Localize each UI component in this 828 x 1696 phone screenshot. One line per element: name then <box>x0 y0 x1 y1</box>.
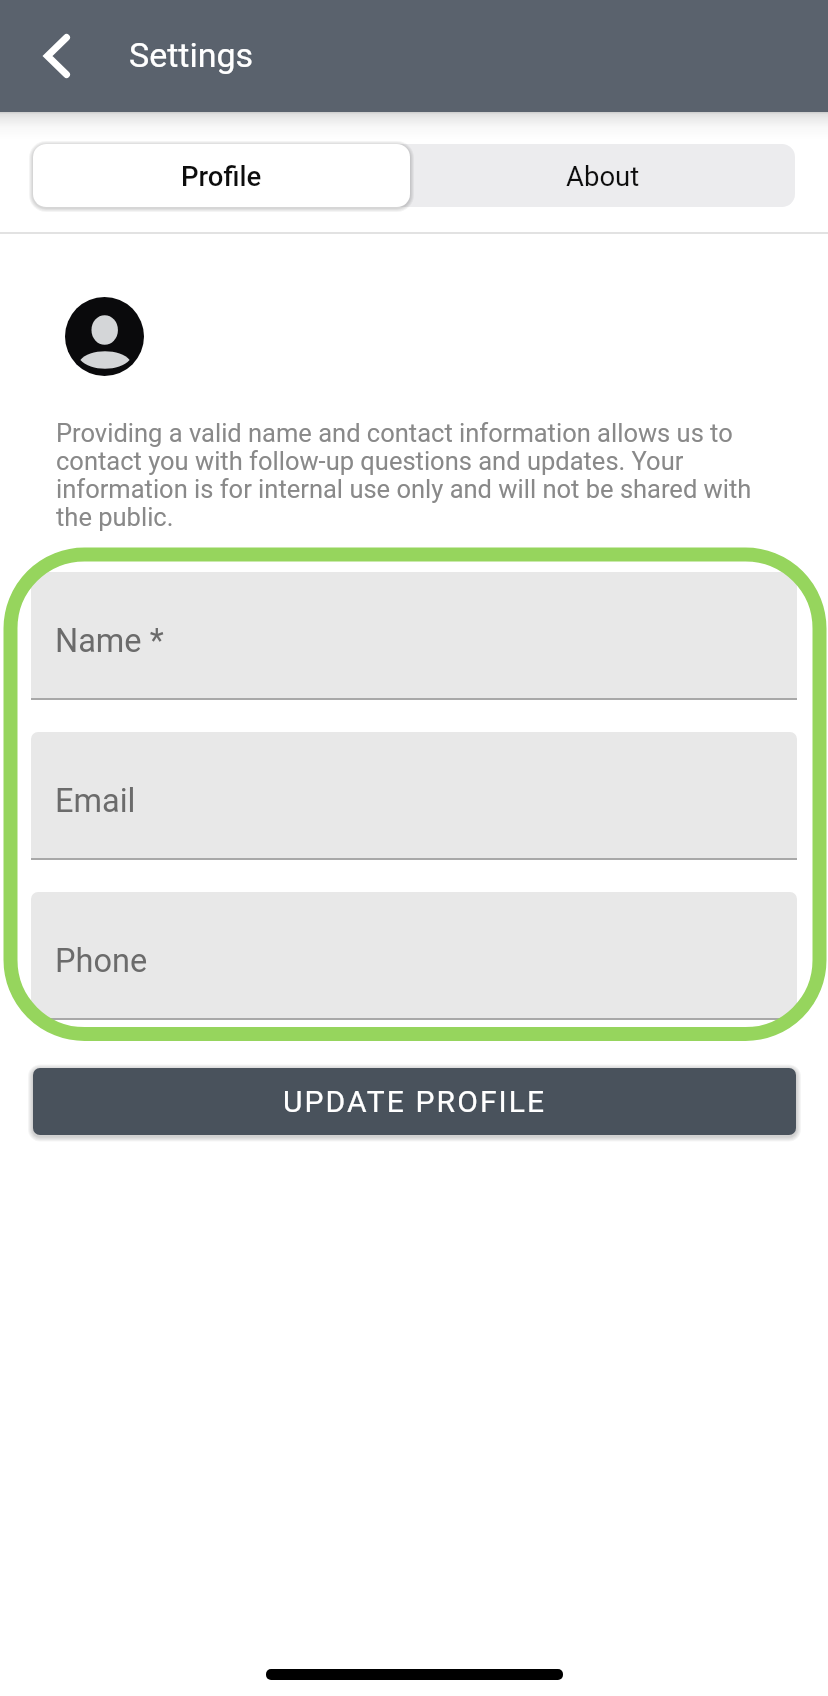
staticText: About <box>566 160 640 192</box>
staticText: Providing a valid name and contact infor… <box>56 418 778 533</box>
staticText: Phone <box>55 942 148 980</box>
button[interactable]: Back <box>19 18 95 94</box>
button[interactable]: Profile <box>33 144 410 207</box>
button[interactable]: Phone <box>31 892 797 1020</box>
button[interactable]: Name * <box>31 572 797 700</box>
staticText: Email <box>55 782 136 820</box>
staticText: UPDATE PROFILE <box>283 1084 547 1119</box>
staticText: Settings <box>129 35 254 75</box>
button[interactable]: UPDATE PROFILE <box>33 1068 796 1135</box>
button[interactable]: Email <box>31 732 797 860</box>
staticText: Profile <box>181 160 262 192</box>
staticText: Name * <box>55 622 164 660</box>
button[interactable]: About <box>410 144 795 207</box>
button[interactable]: Profile picture <box>65 297 144 376</box>
